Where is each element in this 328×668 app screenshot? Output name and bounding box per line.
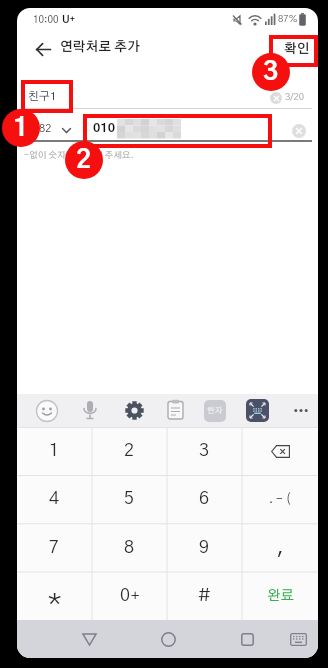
staticText: 한자 <box>207 407 223 415</box>
button[interactable]: 7 <box>17 524 92 572</box>
staticText: 0 <box>120 587 131 605</box>
staticText: 확인 <box>284 43 310 56</box>
button[interactable]: , <box>242 524 318 572</box>
staticText: 3 <box>199 442 210 460</box>
staticText: . - ( <box>269 493 291 505</box>
staticText: 9 <box>199 539 210 557</box>
button[interactable]: 8 <box>92 524 167 572</box>
button[interactable] <box>270 92 282 104</box>
button[interactable] <box>242 427 318 475</box>
button[interactable]: 6 <box>167 475 242 523</box>
button[interactable] <box>285 626 311 652</box>
button[interactable]: 5 <box>92 475 167 523</box>
staticText: +82 <box>33 123 52 134</box>
staticText: 3/20 <box>285 92 305 102</box>
button[interactable] <box>154 625 182 653</box>
button[interactable] <box>165 399 186 420</box>
staticText: 5 <box>124 490 135 508</box>
staticText: 1 <box>13 115 29 141</box>
button[interactable] <box>35 399 59 423</box>
button[interactable] <box>75 625 103 653</box>
button[interactable] <box>79 399 101 421</box>
button[interactable]: 3 <box>167 427 242 475</box>
staticText: # <box>198 587 211 605</box>
button[interactable]: 2 <box>92 427 167 475</box>
button[interactable]: 4 <box>17 475 92 523</box>
staticText: * <box>48 588 62 612</box>
staticText: 연락처로 추가 <box>60 41 140 54</box>
staticText: 87% <box>278 14 298 24</box>
staticText: 10:00 <box>33 15 62 25</box>
button[interactable]: 완료 <box>242 572 318 620</box>
button[interactable]: 1 <box>17 427 92 475</box>
staticText: 6 <box>199 490 210 508</box>
staticText: -없이 숫자만 입력해 주세요. <box>24 151 134 160</box>
staticText: + <box>131 589 140 604</box>
button[interactable]: # <box>167 572 242 620</box>
button[interactable]: 0 <box>92 572 167 620</box>
staticText: 010 <box>93 122 115 135</box>
button[interactable]: 9 <box>167 524 242 572</box>
button[interactable]: 확인 <box>278 37 316 61</box>
staticText: 7 <box>49 539 60 557</box>
staticText: 친구1 <box>28 91 57 103</box>
button[interactable]: 한자 <box>204 400 226 422</box>
staticText: 2 <box>76 147 92 173</box>
button[interactable] <box>123 399 146 422</box>
staticText: 완료 <box>267 589 294 603</box>
staticText: + <box>70 16 75 24</box>
staticText: 4 <box>49 490 60 508</box>
staticText: 2 <box>124 442 135 460</box>
button[interactable]: . - ( <box>242 475 318 523</box>
staticText: 3 <box>263 59 279 85</box>
staticText: 8 <box>124 539 135 557</box>
button[interactable] <box>27 33 59 65</box>
button[interactable] <box>246 399 269 422</box>
staticText: U <box>62 15 70 26</box>
button[interactable]: * <box>17 572 92 620</box>
staticText: , <box>277 539 284 558</box>
button[interactable] <box>233 625 261 653</box>
staticText: 1 <box>49 442 60 460</box>
button[interactable]: +82 <box>24 119 76 141</box>
button[interactable] <box>292 124 306 138</box>
button[interactable] <box>289 399 312 422</box>
